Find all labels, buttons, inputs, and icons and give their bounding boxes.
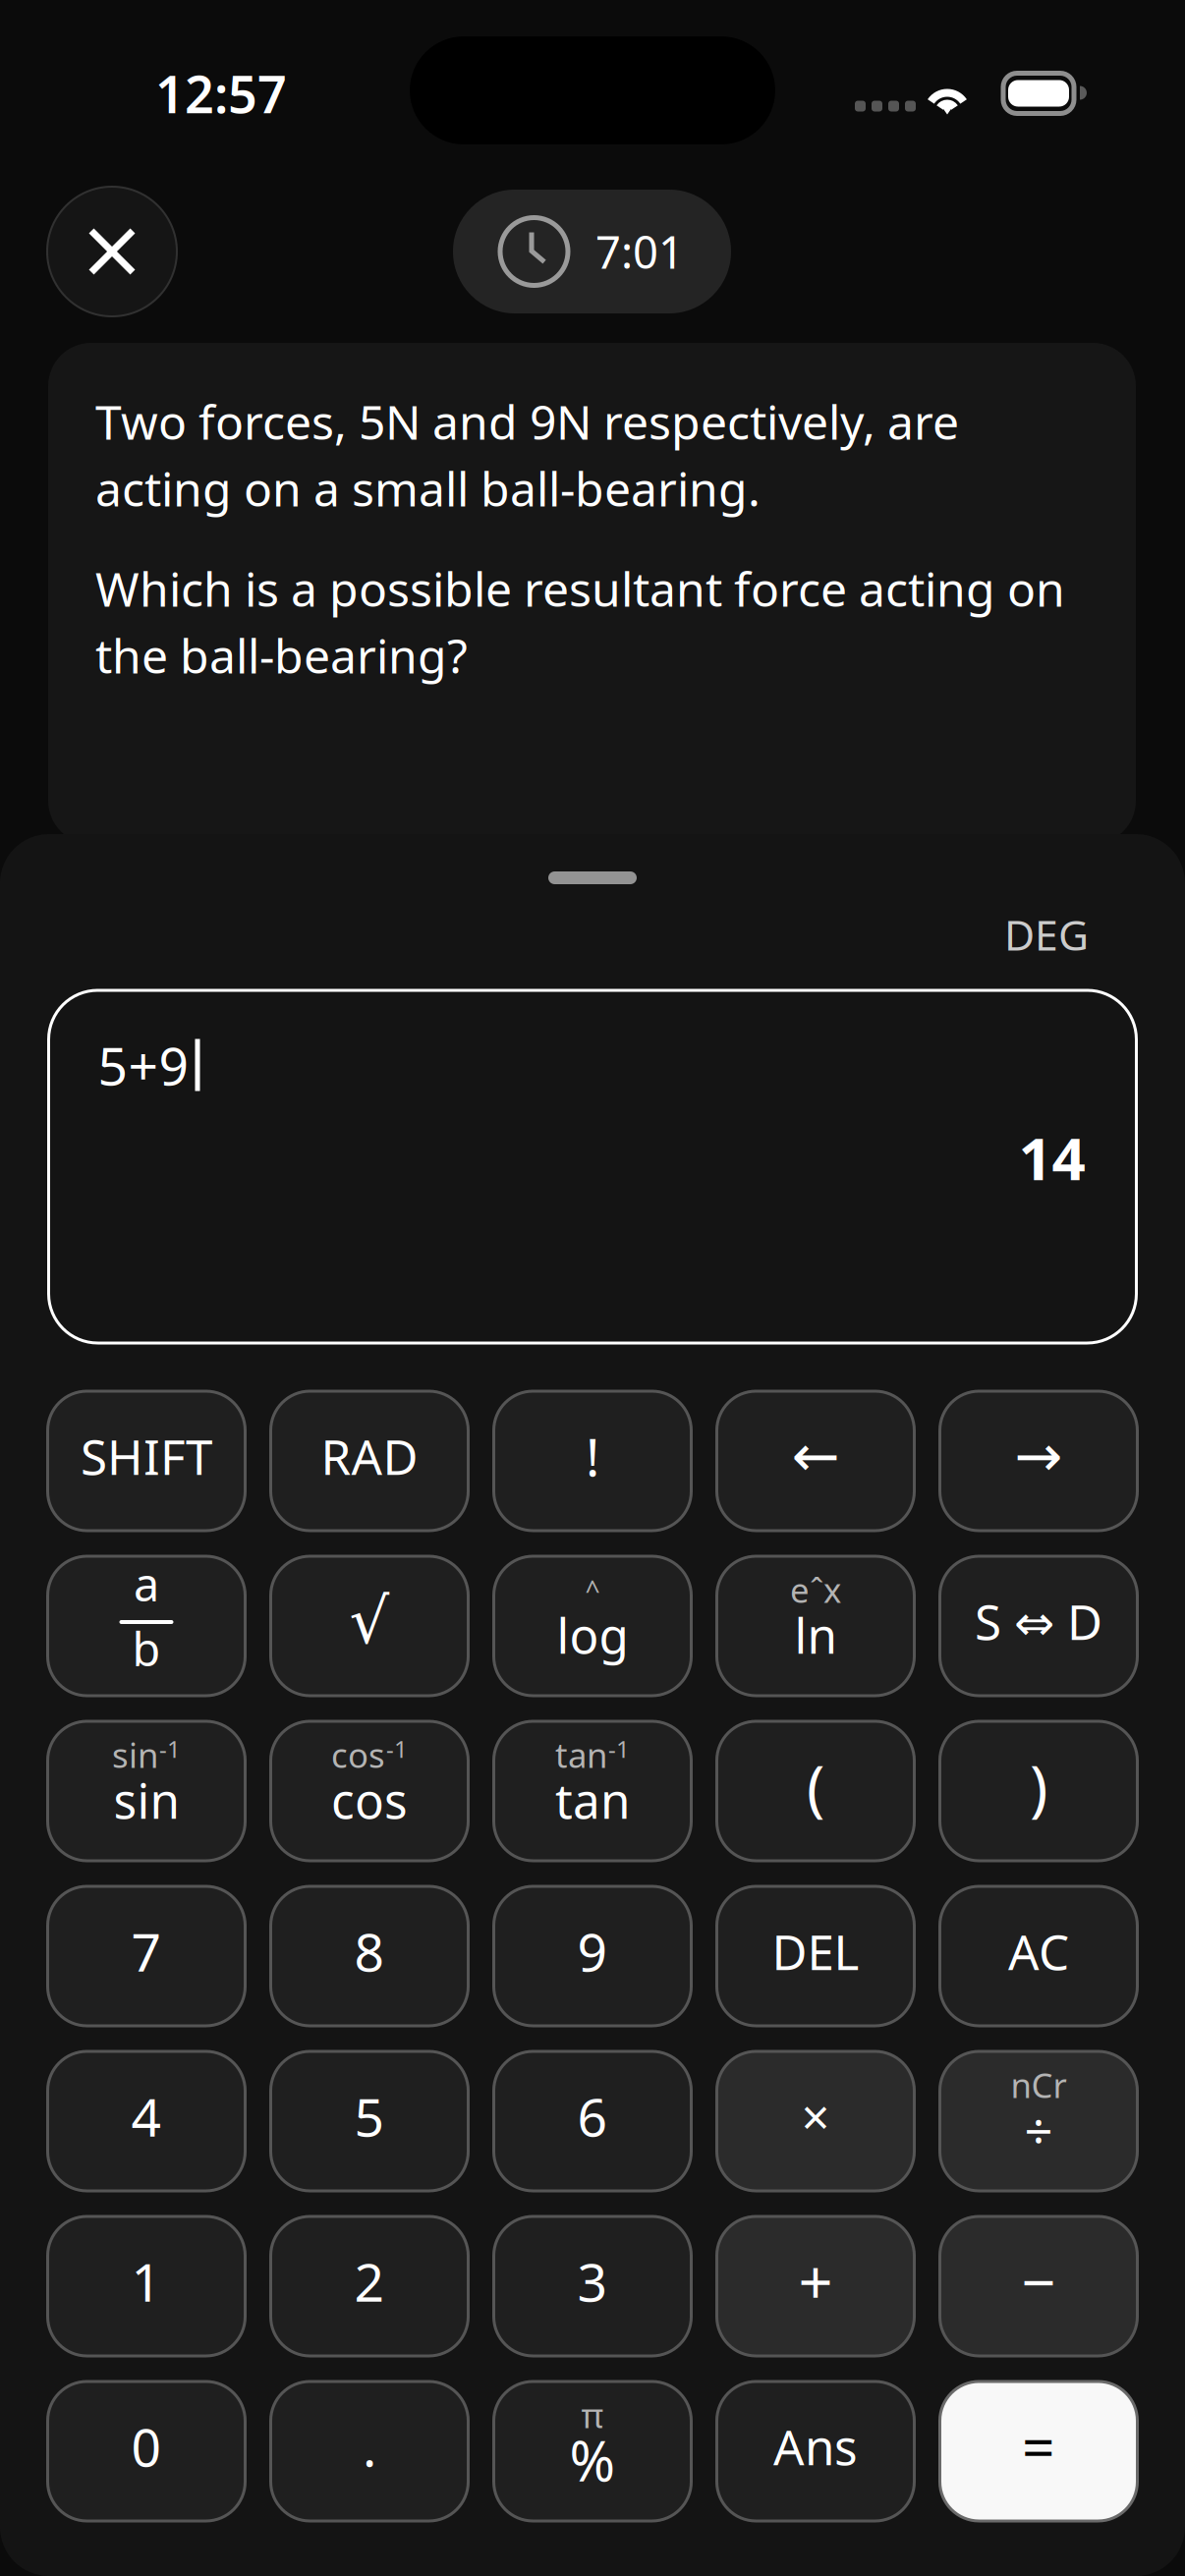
staticText: log <box>557 1603 628 1667</box>
button[interactable]: 8 <box>271 1886 468 2026</box>
button[interactable]: Equals <box>940 2381 1137 2521</box>
staticText: ( <box>807 1746 824 1826</box>
staticText: nCr <box>1011 2062 1067 2107</box>
button[interactable]: ln <box>717 1556 914 1696</box>
staticText: ! <box>586 1421 599 1491</box>
staticText: 7:01 <box>595 222 684 281</box>
staticText: 1 <box>131 2246 162 2316</box>
button[interactable]: 2 <box>271 2216 468 2356</box>
staticText: b <box>132 1618 161 1679</box>
button[interactable]: Ans <box>717 2381 914 2521</box>
staticText: π <box>581 2392 604 2437</box>
staticText: acting on a small ball-bearing. <box>95 457 761 520</box>
button[interactable]: Timer 7:01 <box>453 190 731 313</box>
button[interactable]: 9 <box>494 1886 691 2026</box>
button[interactable]: 7 <box>48 1886 245 2026</box>
button[interactable]: Plus <box>717 2216 914 2356</box>
staticText: tan <box>555 1732 607 1777</box>
staticText: RAD <box>321 1424 418 1488</box>
staticText: 8 <box>354 1916 385 1986</box>
button[interactable]: ) <box>940 1721 1137 1861</box>
staticText: -1 <box>159 1733 181 1764</box>
button[interactable]: Square root <box>271 1556 468 1696</box>
button[interactable]: sin <box>48 1721 245 1861</box>
staticText: % <box>569 2424 616 2497</box>
staticText: 5+9 <box>98 1030 189 1100</box>
button[interactable]: ( <box>717 1721 914 1861</box>
button[interactable]: 3 <box>494 2216 691 2356</box>
staticText: a <box>134 1553 159 1614</box>
staticText: -1 <box>608 1733 630 1764</box>
staticText: DEL <box>772 1919 859 1983</box>
staticText: -1 <box>386 1733 408 1764</box>
staticText: sin <box>112 1732 158 1777</box>
staticText: − <box>1021 2241 1056 2321</box>
staticText: 0 <box>131 2412 162 2481</box>
staticText: eˆx <box>790 1567 841 1612</box>
staticText: 12:57 <box>155 59 287 127</box>
button[interactable]: Move left <box>717 1391 914 1531</box>
staticText: cos <box>331 1768 408 1832</box>
staticText: + <box>798 2241 833 2321</box>
staticText: ln <box>794 1603 837 1667</box>
staticText: the ball-bearing? <box>95 624 468 687</box>
staticText: 14 <box>1018 1118 1085 1197</box>
button[interactable]: Multiply <box>717 2051 914 2191</box>
button[interactable]: 6 <box>494 2051 691 2191</box>
staticText: ← <box>791 1423 840 1489</box>
button[interactable]: Close <box>47 187 177 316</box>
button[interactable]: SHIFT <box>48 1391 245 1531</box>
staticText: 6 <box>577 2081 608 2151</box>
button[interactable]: 1 <box>48 2216 245 2356</box>
staticText: ^ <box>585 1572 600 1607</box>
staticText: = <box>1022 2408 1055 2485</box>
staticText: 7 <box>131 1916 162 1986</box>
staticText: sin <box>113 1768 179 1832</box>
staticText: AC <box>1008 1919 1069 1983</box>
staticText: 5 <box>354 2081 385 2151</box>
button[interactable]: DEL <box>717 1886 914 2026</box>
staticText: SHIFT <box>81 1424 212 1488</box>
button[interactable]: log <box>494 1556 691 1696</box>
button[interactable]: . <box>271 2381 468 2521</box>
staticText: × <box>801 2083 830 2149</box>
staticText: DEG <box>1004 907 1089 962</box>
staticText: 4 <box>131 2081 162 2151</box>
button[interactable]: ! <box>494 1391 691 1531</box>
staticText: → <box>1015 1423 1063 1489</box>
button[interactable]: Minus <box>940 2216 1137 2356</box>
staticText: . <box>363 2412 376 2481</box>
button[interactable]: Percent <box>494 2381 691 2521</box>
staticText: Which is a possible resultant force acti… <box>95 557 1065 620</box>
button[interactable]: cos <box>271 1721 468 1861</box>
staticText: √ <box>349 1585 390 1657</box>
button[interactable]: tan <box>494 1721 691 1861</box>
button[interactable]: RAD <box>271 1391 468 1531</box>
staticText: 2 <box>354 2246 385 2316</box>
button[interactable]: 5 <box>271 2051 468 2191</box>
staticText: Two forces, 5N and 9N respectively, are <box>95 390 959 453</box>
staticText: tan <box>555 1768 630 1832</box>
staticText: cos <box>331 1732 385 1777</box>
staticText: 9 <box>577 1916 608 1986</box>
button[interactable]: 0 <box>48 2381 245 2521</box>
staticText: 3 <box>577 2246 608 2316</box>
button[interactable]: Divide <box>940 2051 1137 2191</box>
button[interactable]: 4 <box>48 2051 245 2191</box>
button[interactable]: AC <box>940 1886 1137 2026</box>
staticText: ) <box>1030 1746 1047 1826</box>
staticText: ÷ <box>1024 2097 1053 2163</box>
button[interactable]: Move right <box>940 1391 1137 1531</box>
staticText: Ans <box>773 2414 858 2478</box>
button[interactable]: S to D <box>940 1556 1137 1696</box>
staticText: S ⇔ D <box>975 1589 1102 1653</box>
button[interactable]: Fraction <box>48 1556 245 1696</box>
